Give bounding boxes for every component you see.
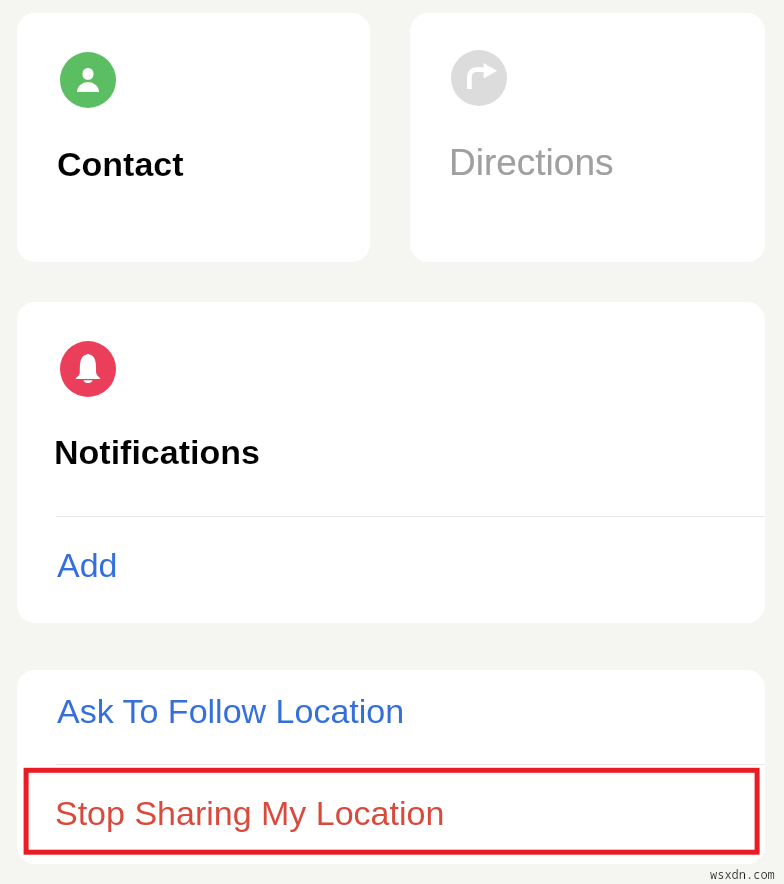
- other: Contact: [60, 52, 116, 108]
- button[interactable]: Ask To Follow Location: [17, 670, 765, 764]
- staticText: Notifications: [54, 433, 260, 471]
- button[interactable]: Notifications: [17, 302, 765, 516]
- button[interactable]: Add: [17, 517, 765, 623]
- staticText: Contact: [57, 145, 184, 183]
- button[interactable]: Contact: [17, 13, 370, 262]
- staticText: Add: [57, 546, 118, 584]
- staticText: Ask To Follow Location: [57, 692, 405, 730]
- staticText: wsxdn.com: [710, 866, 775, 882]
- staticText: Stop Sharing My Location: [55, 794, 445, 832]
- other: Notifications: [60, 341, 116, 397]
- staticText: Directions: [449, 142, 614, 183]
- button[interactable]: Directions: [410, 13, 765, 262]
- button[interactable]: Stop Sharing My Location: [17, 765, 765, 859]
- other: Directions: [451, 50, 507, 106]
